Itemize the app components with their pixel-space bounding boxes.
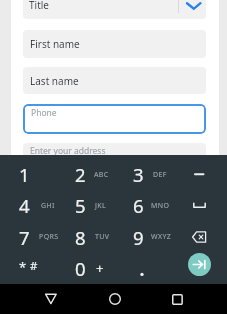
button[interactable]: Last name (23, 67, 206, 94)
button[interactable]: 0 (50, 255, 110, 281)
button[interactable]: 7 (0, 224, 54, 250)
button[interactable]: 1 (0, 161, 54, 187)
button[interactable]: PQRS (19, 224, 79, 250)
staticText: 6 (133, 193, 144, 218)
button[interactable] (109, 293, 121, 305)
staticText: DEF (153, 170, 167, 180)
staticText: Phone (31, 107, 57, 119)
button[interactable]: MNO (130, 193, 190, 219)
button[interactable]: First name (23, 30, 206, 58)
button[interactable] (138, 270, 146, 278)
staticText: * (19, 258, 27, 276)
button[interactable] (194, 173, 204, 176)
button[interactable] (186, 1, 201, 11)
staticText: 9 (133, 225, 144, 250)
staticText: PQRS (39, 232, 59, 242)
button[interactable]: * (0, 254, 53, 280)
staticText: TUV (95, 232, 110, 242)
staticText: WXYZ (151, 232, 172, 242)
button[interactable]: + (70, 255, 130, 281)
button[interactable]: 4 (0, 192, 54, 218)
button[interactable]: DEF (130, 162, 190, 188)
button[interactable] (192, 231, 207, 243)
button[interactable]: TUV (72, 224, 132, 250)
staticText: Enter your address (30, 145, 106, 157)
button[interactable]: # (4, 253, 64, 279)
staticText: 5 (75, 193, 86, 218)
button[interactable] (193, 201, 206, 209)
button[interactable]: 2 (50, 161, 110, 187)
staticText: Title (29, 0, 49, 12)
staticText: 7 (19, 225, 30, 250)
staticText: 2 (75, 162, 86, 187)
button[interactable] (44, 293, 57, 305)
button[interactable]: 3 (108, 161, 168, 187)
staticText: + (96, 259, 104, 277)
staticText: 4 (19, 193, 30, 218)
button[interactable]: JKL (71, 193, 131, 219)
button[interactable] (188, 253, 211, 276)
button[interactable] (172, 294, 183, 305)
button[interactable] (23, 0, 206, 19)
button[interactable]: Enter your address (23, 143, 206, 169)
staticText: 8 (75, 225, 86, 250)
staticText: 1 (19, 162, 30, 187)
button[interactable]: ABC (71, 162, 131, 188)
button[interactable]: 9 (108, 224, 168, 250)
staticText: ABC (94, 170, 109, 180)
staticText: MNO (151, 201, 170, 211)
button[interactable]: Phone (23, 104, 206, 134)
button[interactable]: 5 (50, 192, 110, 218)
staticText: Last name (30, 74, 79, 88)
staticText: 3 (133, 162, 144, 187)
staticText: # (30, 258, 38, 274)
button[interactable]: 8 (50, 224, 110, 250)
staticText: 0 (75, 256, 86, 281)
button[interactable]: 6 (108, 192, 168, 218)
staticText: First name (30, 37, 80, 51)
staticText: GHI (41, 201, 55, 211)
staticText: JKL (95, 201, 107, 211)
button[interactable]: GHI (18, 193, 78, 219)
button[interactable]: WXYZ (131, 224, 191, 250)
